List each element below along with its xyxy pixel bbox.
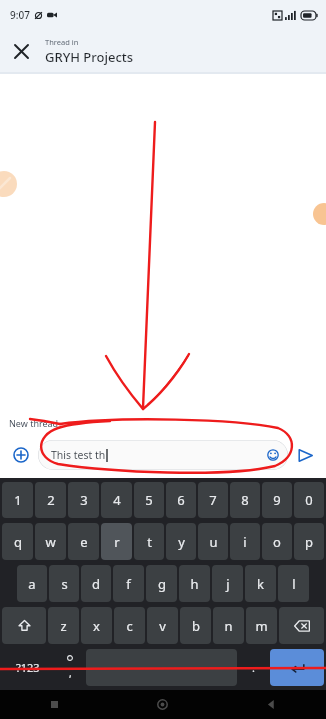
staticText: . [252, 660, 255, 675]
staticText: j [226, 575, 230, 593]
button[interactable]: . [239, 649, 268, 686]
button[interactable]: 3 [68, 482, 99, 518]
staticText: q [14, 533, 22, 551]
button[interactable]: c [114, 607, 145, 644]
staticText: ?123 [16, 660, 40, 675]
button[interactable]: Send [288, 438, 322, 472]
button[interactable]: 0 [294, 482, 324, 518]
staticText: e [80, 533, 88, 551]
staticText: 4 [113, 491, 121, 509]
staticText: t [147, 533, 152, 551]
button[interactable]: Space [86, 649, 237, 686]
button[interactable]: 1 [2, 482, 33, 518]
button[interactable]: x [81, 607, 112, 644]
button[interactable]: 9 [262, 482, 292, 518]
button[interactable]: b [180, 607, 211, 644]
button[interactable]: 4 [101, 482, 132, 518]
button[interactable]: l [278, 565, 309, 602]
button[interactable]: 7 [198, 482, 228, 518]
staticText: w [45, 533, 56, 551]
button[interactable]: 6 [166, 482, 196, 518]
button[interactable]: s [49, 565, 79, 602]
staticText: i [243, 533, 247, 551]
staticText: c [126, 617, 133, 635]
button[interactable]: Recents [0, 690, 108, 719]
button[interactable]: p [294, 523, 324, 560]
button[interactable]: t [134, 523, 164, 560]
button[interactable]: h [179, 565, 210, 602]
staticText: u [209, 533, 218, 551]
staticText: p [305, 533, 313, 551]
staticText: g [158, 575, 166, 593]
button[interactable]: o [262, 523, 292, 560]
button[interactable]: Shift [2, 607, 46, 644]
staticText: Thread in [45, 37, 79, 47]
staticText: f [126, 575, 131, 593]
staticText: v [159, 617, 166, 635]
button[interactable]: Emoji [265, 447, 281, 463]
button[interactable]: a [17, 565, 47, 602]
staticText: k [257, 575, 264, 593]
staticText: 9 [273, 491, 281, 509]
button[interactable]: e [68, 523, 99, 560]
button[interactable]: r [101, 523, 132, 560]
staticText: d [92, 575, 100, 593]
button[interactable]: n [213, 607, 244, 644]
button[interactable]: Backspace [279, 607, 324, 644]
button[interactable]: Add attachment [4, 438, 38, 472]
button[interactable]: Home [108, 690, 217, 719]
staticText: b [192, 617, 200, 635]
button[interactable]: i [230, 523, 260, 560]
button[interactable]: Enter [270, 649, 324, 686]
button[interactable]: y [166, 523, 196, 560]
staticText: y [178, 533, 185, 551]
staticText: 2 [47, 491, 55, 509]
staticText: 5 [145, 491, 153, 509]
button[interactable]: q [2, 523, 33, 560]
button[interactable]: w [35, 523, 66, 560]
staticText: 8 [241, 491, 249, 509]
button[interactable]: k [245, 565, 276, 602]
button[interactable]: f [113, 565, 144, 602]
staticText: 6 [177, 491, 185, 509]
button[interactable]: Close [0, 30, 42, 72]
button[interactable]: u [198, 523, 228, 560]
button[interactable]: Back [217, 690, 326, 719]
staticText: h [190, 575, 199, 593]
staticText: 1 [14, 491, 22, 509]
button[interactable]: , [55, 649, 84, 686]
button[interactable]: 2 [35, 482, 66, 518]
button[interactable]: ?123 [2, 649, 53, 686]
button[interactable]: g [146, 565, 177, 602]
staticText: o [273, 533, 281, 551]
staticText: 7 [209, 491, 217, 509]
staticText: 9:07 [10, 8, 30, 22]
staticText: s [61, 575, 68, 593]
staticText: n [224, 617, 233, 635]
staticText: l [292, 575, 296, 593]
staticText: , [69, 666, 72, 680]
staticText: z [60, 617, 67, 635]
button[interactable]: 5 [134, 482, 164, 518]
staticText: m [255, 617, 268, 635]
staticText: a [28, 575, 36, 593]
button[interactable]: z [48, 607, 79, 644]
staticText: This test th [51, 448, 106, 462]
staticText: 3 [80, 491, 88, 509]
button[interactable]: 8 [230, 482, 260, 518]
staticText: GRYH Projects [45, 48, 134, 66]
staticText: x [93, 617, 100, 635]
button[interactable]: d [81, 565, 111, 602]
staticText: r [114, 533, 120, 551]
button[interactable]: v [147, 607, 178, 644]
button[interactable]: This test th [38, 440, 288, 470]
button[interactable]: j [212, 565, 243, 602]
button[interactable]: m [246, 607, 277, 644]
staticText: New thread [9, 417, 59, 429]
staticText: 0 [305, 491, 313, 509]
